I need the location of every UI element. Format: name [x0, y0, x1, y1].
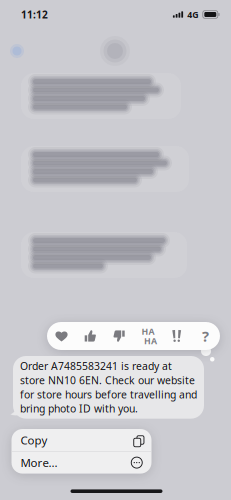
button[interactable]: More... — [11, 452, 151, 474]
staticText: ? — [202, 326, 209, 346]
button[interactable]: Emphasize — [162, 322, 191, 350]
staticText: More... — [20, 455, 57, 470]
staticText: Order A7485583241 is ready at store NN10… — [20, 359, 197, 416]
button[interactable]: Love — [47, 322, 76, 350]
button[interactable]: Like — [76, 322, 105, 350]
staticText: HA — [144, 335, 157, 347]
staticText: Copy — [20, 432, 47, 448]
button[interactable]: Copy — [11, 429, 151, 451]
button[interactable]: Question — [191, 322, 220, 350]
staticText: HA — [141, 325, 154, 337]
staticText: 4G — [187, 8, 198, 20]
staticText: 11:12 — [21, 8, 48, 21]
button[interactable]: Dislike — [105, 322, 133, 350]
button[interactable]: Haha — [133, 322, 162, 350]
